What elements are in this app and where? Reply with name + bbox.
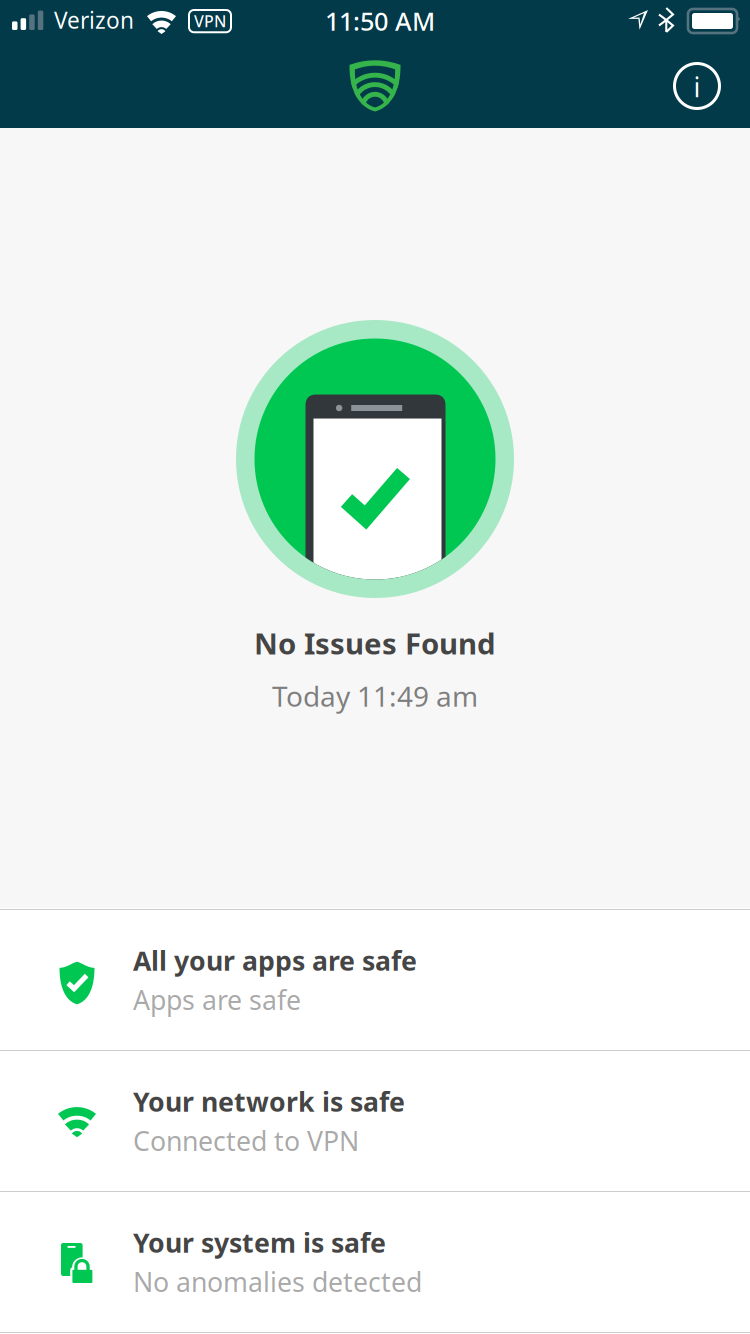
staticText: All your apps are safe [133, 943, 417, 978]
staticText: VPN [194, 10, 226, 32]
button[interactable]: Information [666, 55, 728, 117]
staticText: Your network is safe [133, 1084, 405, 1119]
staticText: 11:50 AM [325, 4, 435, 38]
button[interactable]: All your apps are safe [0, 910, 750, 1050]
staticText: Connected to VPN [133, 1123, 359, 1158]
button[interactable]: Your network is safe [0, 1051, 750, 1191]
staticText: Today 11:49 am [272, 677, 478, 715]
button[interactable]: Your system is safe [0, 1192, 750, 1332]
staticText: Your system is safe [133, 1225, 386, 1260]
staticText: Apps are safe [133, 982, 301, 1017]
staticText: Verizon [54, 5, 134, 35]
staticText: No Issues Found [254, 623, 496, 662]
staticText: No anomalies detected [133, 1264, 422, 1299]
staticText: i [693, 69, 700, 105]
